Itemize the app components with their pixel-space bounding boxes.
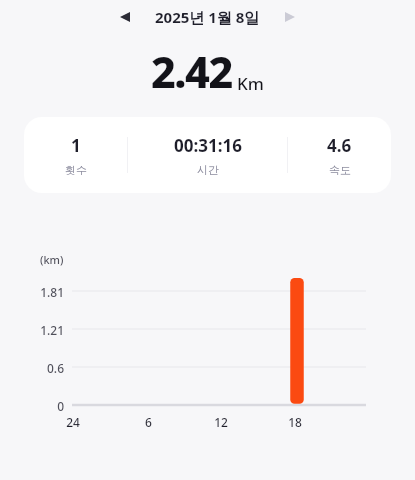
- staticText: 18: [288, 414, 302, 430]
- staticText: 24: [66, 414, 80, 430]
- staticText: 1.81: [40, 284, 64, 300]
- staticText: 횟수: [65, 163, 87, 177]
- staticText: 2025년 1월 8일: [155, 7, 260, 27]
- button[interactable]: 2025년 1월 8일: [155, 7, 260, 27]
- staticText: 시간: [197, 163, 219, 177]
- button[interactable]: 1: [24, 128, 127, 183]
- staticText: 4.6: [327, 134, 352, 157]
- staticText: 1: [71, 134, 81, 157]
- staticText: 0.6: [47, 360, 64, 376]
- button[interactable]: Previous day: [111, 3, 139, 31]
- staticText: 12: [214, 414, 228, 430]
- staticText: 2.42: [151, 42, 232, 101]
- staticText: 6: [145, 414, 152, 430]
- staticText: 속도: [329, 163, 351, 177]
- button[interactable]: 00:31:16: [128, 128, 287, 183]
- staticText: 1.21: [40, 322, 64, 338]
- staticText: 00:31:16: [174, 134, 242, 157]
- button[interactable]: 4.6: [288, 128, 391, 183]
- staticText: Km: [237, 72, 264, 95]
- staticText: (km): [40, 252, 64, 267]
- staticText: 0: [57, 398, 64, 414]
- button[interactable]: Next day: [276, 3, 304, 31]
